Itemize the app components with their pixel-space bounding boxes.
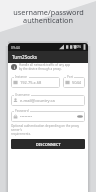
staticText: Instance [15,75,28,79]
staticText: Username [15,93,30,97]
button[interactable]: e-mail@country.ca [11,95,85,106]
staticText: 5044 [72,80,82,85]
button[interactable]: DISCONNECT [11,139,85,149]
staticText: Port [67,75,73,79]
staticText: authentication [23,15,73,25]
button[interactable]: Show password [77,114,83,119]
staticText: e-mail@country.ca [20,98,55,103]
staticText: 192.75.x.68 [20,80,42,85]
staticText: •••••••• [20,114,33,119]
button[interactable]: 5044 [63,77,85,88]
staticText: 09:44 [11,45,20,50]
button[interactable]: •••••••• [11,111,85,122]
staticText: 100% [73,45,82,49]
staticText: DISCONNECT [36,142,61,147]
staticText: Password [15,109,29,113]
staticText: Handle all network traffic of any app by… [19,63,71,71]
staticText: i [14,65,15,70]
staticText: Optional authentication depending on the… [11,124,85,136]
staticText: username/password [13,7,84,17]
staticText: Turn2Socks [12,54,38,60]
button[interactable]: 192.75.x.68 [11,77,60,88]
